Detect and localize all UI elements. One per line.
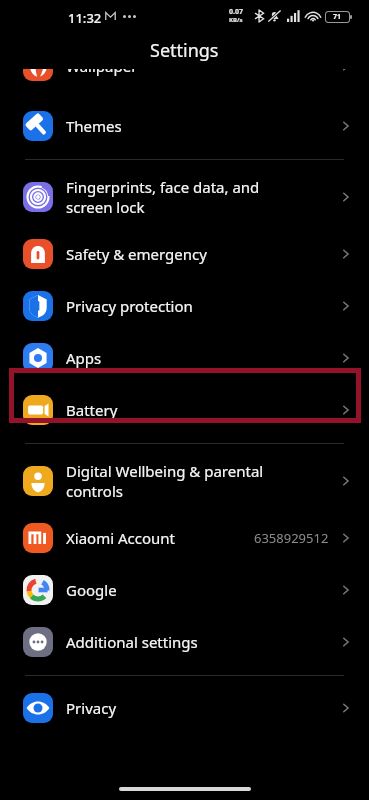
staticText: controls bbox=[66, 481, 123, 501]
staticText: screen lock bbox=[66, 197, 145, 217]
staticText: Safety & emergency bbox=[66, 244, 207, 264]
staticText: KB/s bbox=[229, 16, 243, 24]
staticText: Wallpaper bbox=[66, 69, 138, 76]
staticText: Fingerprints, face data, and bbox=[66, 177, 260, 197]
button[interactable]: Xiaomi Account bbox=[0, 512, 369, 564]
staticText: 71 bbox=[333, 12, 342, 22]
staticText: Privacy protection bbox=[66, 296, 193, 316]
button[interactable]: Google bbox=[0, 564, 369, 616]
button[interactable]: Privacy bbox=[0, 682, 369, 734]
staticText: Battery bbox=[66, 400, 118, 420]
staticText: Settings bbox=[150, 38, 219, 63]
staticText: Additional settings bbox=[66, 632, 198, 652]
button[interactable]: Wallpaper bbox=[0, 69, 369, 81]
button[interactable]: Safety & emergency bbox=[0, 228, 369, 280]
button[interactable]: Battery bbox=[0, 384, 369, 436]
staticText: 11:32 bbox=[68, 9, 102, 27]
button[interactable]: Privacy protection bbox=[0, 280, 369, 332]
staticText: Xiaomi Account bbox=[66, 528, 175, 548]
button[interactable]: Digital Wellbeing & parental bbox=[0, 450, 369, 512]
button[interactable]: Additional settings bbox=[0, 616, 369, 668]
button[interactable]: Themes bbox=[0, 100, 369, 152]
staticText: Apps bbox=[66, 348, 102, 368]
button[interactable]: Fingerprints, face data, and bbox=[0, 166, 369, 228]
button[interactable]: Apps bbox=[0, 332, 369, 384]
staticText: 0.07 bbox=[229, 7, 243, 17]
staticText: Google bbox=[66, 580, 117, 600]
staticText: Privacy bbox=[66, 698, 117, 718]
staticText: Themes bbox=[66, 116, 122, 136]
staticText: Digital Wellbeing & parental bbox=[66, 461, 264, 481]
other: Apps highlighted bbox=[9, 368, 361, 423]
staticText: 6358929512 bbox=[254, 529, 329, 547]
